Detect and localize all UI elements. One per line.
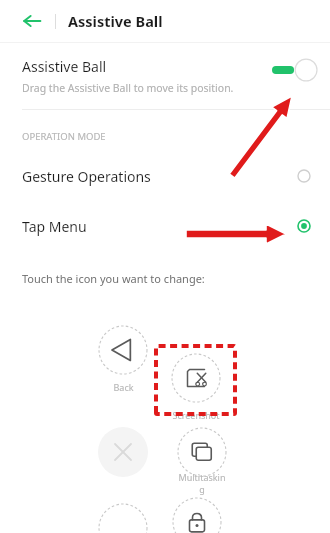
button[interactable]: Assistive Ball toggle [272,57,318,83]
staticText: Drag the Assistive Ball to move its posi… [22,81,234,95]
button[interactable]: Multitasking action [177,427,227,495]
button[interactable]: Assistive Ball [0,43,330,109]
button[interactable]: Back [18,7,46,35]
button[interactable]: Lock screen action [172,497,222,533]
staticText: Tap Menu [22,217,87,236]
button[interactable]: Tap Menu [0,209,330,243]
staticText: Assistive Ball [68,11,163,31]
staticText: Screenshot [172,409,220,421]
staticText: Assistive Ball [22,57,107,76]
button[interactable]: Screenshot action [171,353,221,421]
staticText: Gesture Operations [22,167,151,186]
staticText: Multitasking [177,471,227,495]
button[interactable]: Close [98,427,148,477]
button[interactable]: Back action [98,325,148,393]
staticText: OPERATION MODE [22,130,106,143]
button[interactable]: Gesture Operations [0,159,330,193]
staticText: Back [113,381,134,393]
staticText: Touch the icon you want to change: [22,271,205,286]
